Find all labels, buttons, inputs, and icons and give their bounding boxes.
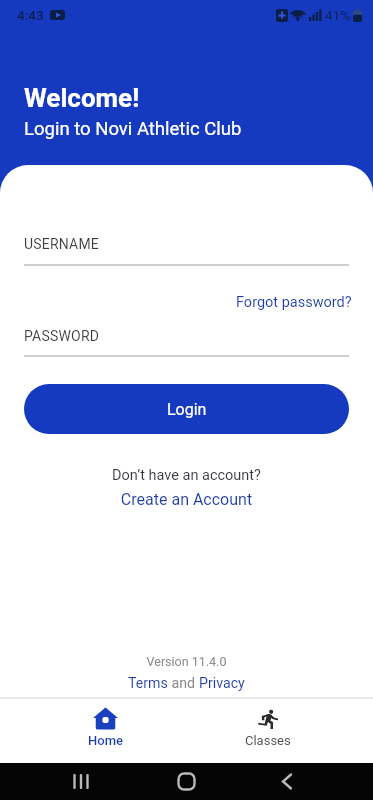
button[interactable]: Login — [24, 384, 349, 434]
button[interactable]: USERNAME — [24, 236, 349, 266]
staticText: Login — [167, 400, 207, 419]
button[interactable]: Forgot password? — [236, 294, 352, 311]
staticText: Welcome! — [24, 83, 140, 113]
staticText: 4:43 — [17, 7, 44, 23]
staticText: Version 11.4.0 — [0, 654, 373, 669]
staticText: Login to Novi Athletic Club — [24, 118, 242, 140]
staticText: USERNAME — [24, 236, 99, 252]
staticText: Don’t have an account? — [0, 467, 373, 484]
button[interactable]: Home — [24, 707, 186, 748]
staticText: Home — [88, 733, 123, 748]
staticText: 41% — [325, 7, 351, 23]
button[interactable]: PASSWORD — [24, 328, 349, 357]
button[interactable]: Terms — [128, 675, 168, 692]
button[interactable]: Privacy — [199, 675, 245, 692]
button[interactable]: Create an Account — [0, 490, 373, 509]
staticText: PASSWORD — [24, 328, 100, 344]
staticText: and — [168, 675, 199, 692]
button[interactable]: Classes — [186, 710, 349, 748]
staticText: Classes — [245, 733, 291, 748]
